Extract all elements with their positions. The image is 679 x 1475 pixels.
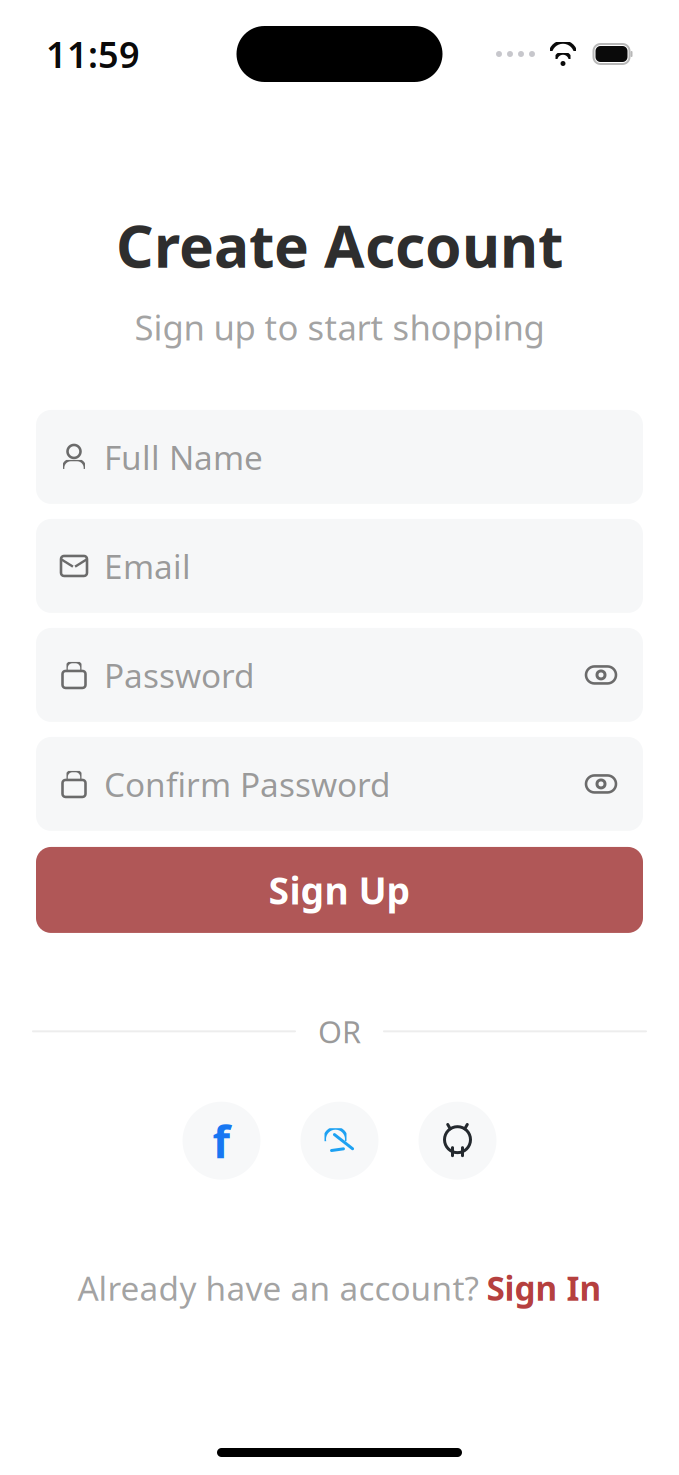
staticText: Sign Up xyxy=(268,865,410,915)
button[interactable]: Sign up with GitHub xyxy=(418,1102,496,1180)
button[interactable]: Already have an account? xyxy=(77,1266,601,1310)
staticText: Confirm Password xyxy=(104,762,391,806)
button[interactable]: Sign Up xyxy=(36,847,643,933)
staticText: Already have an account? xyxy=(77,1266,478,1310)
button[interactable]: Full Name xyxy=(36,410,643,504)
staticText: 11:59 xyxy=(46,30,140,78)
staticText: Email xyxy=(104,544,191,588)
staticText: Sign up to start shopping xyxy=(134,304,544,350)
button[interactable]: Sign up with Twitter xyxy=(300,1102,378,1180)
button[interactable]: Password xyxy=(36,628,643,722)
staticText: Create Account xyxy=(116,206,563,284)
staticText: Sign In xyxy=(486,1266,601,1310)
staticText: Password xyxy=(104,653,255,697)
button[interactable]: Email xyxy=(36,519,643,613)
button[interactable]: Confirm Password xyxy=(36,737,643,831)
button[interactable]: Sign up with Facebook xyxy=(182,1102,260,1180)
staticText: f xyxy=(212,1111,230,1171)
staticText: Full Name xyxy=(104,435,263,479)
staticText: OR xyxy=(318,1011,361,1052)
